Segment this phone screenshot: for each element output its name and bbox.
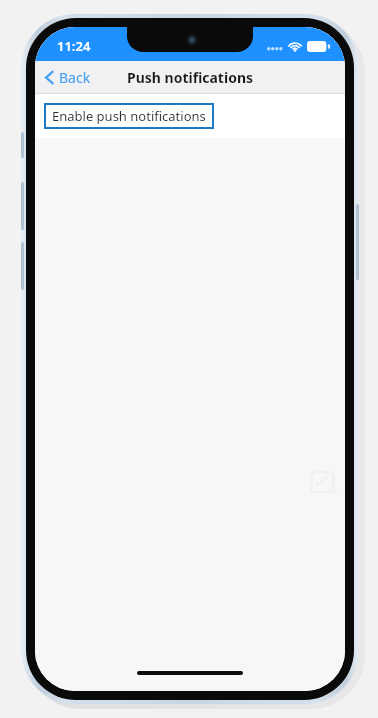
staticText: 11:24 bbox=[57, 37, 91, 55]
staticText: Push notifications bbox=[127, 68, 254, 87]
staticText: Back bbox=[59, 68, 91, 87]
button[interactable]: Enable push notifications bbox=[35, 94, 345, 138]
staticText: Enable push notifications bbox=[52, 107, 206, 125]
button[interactable]: Back bbox=[35, 64, 103, 91]
